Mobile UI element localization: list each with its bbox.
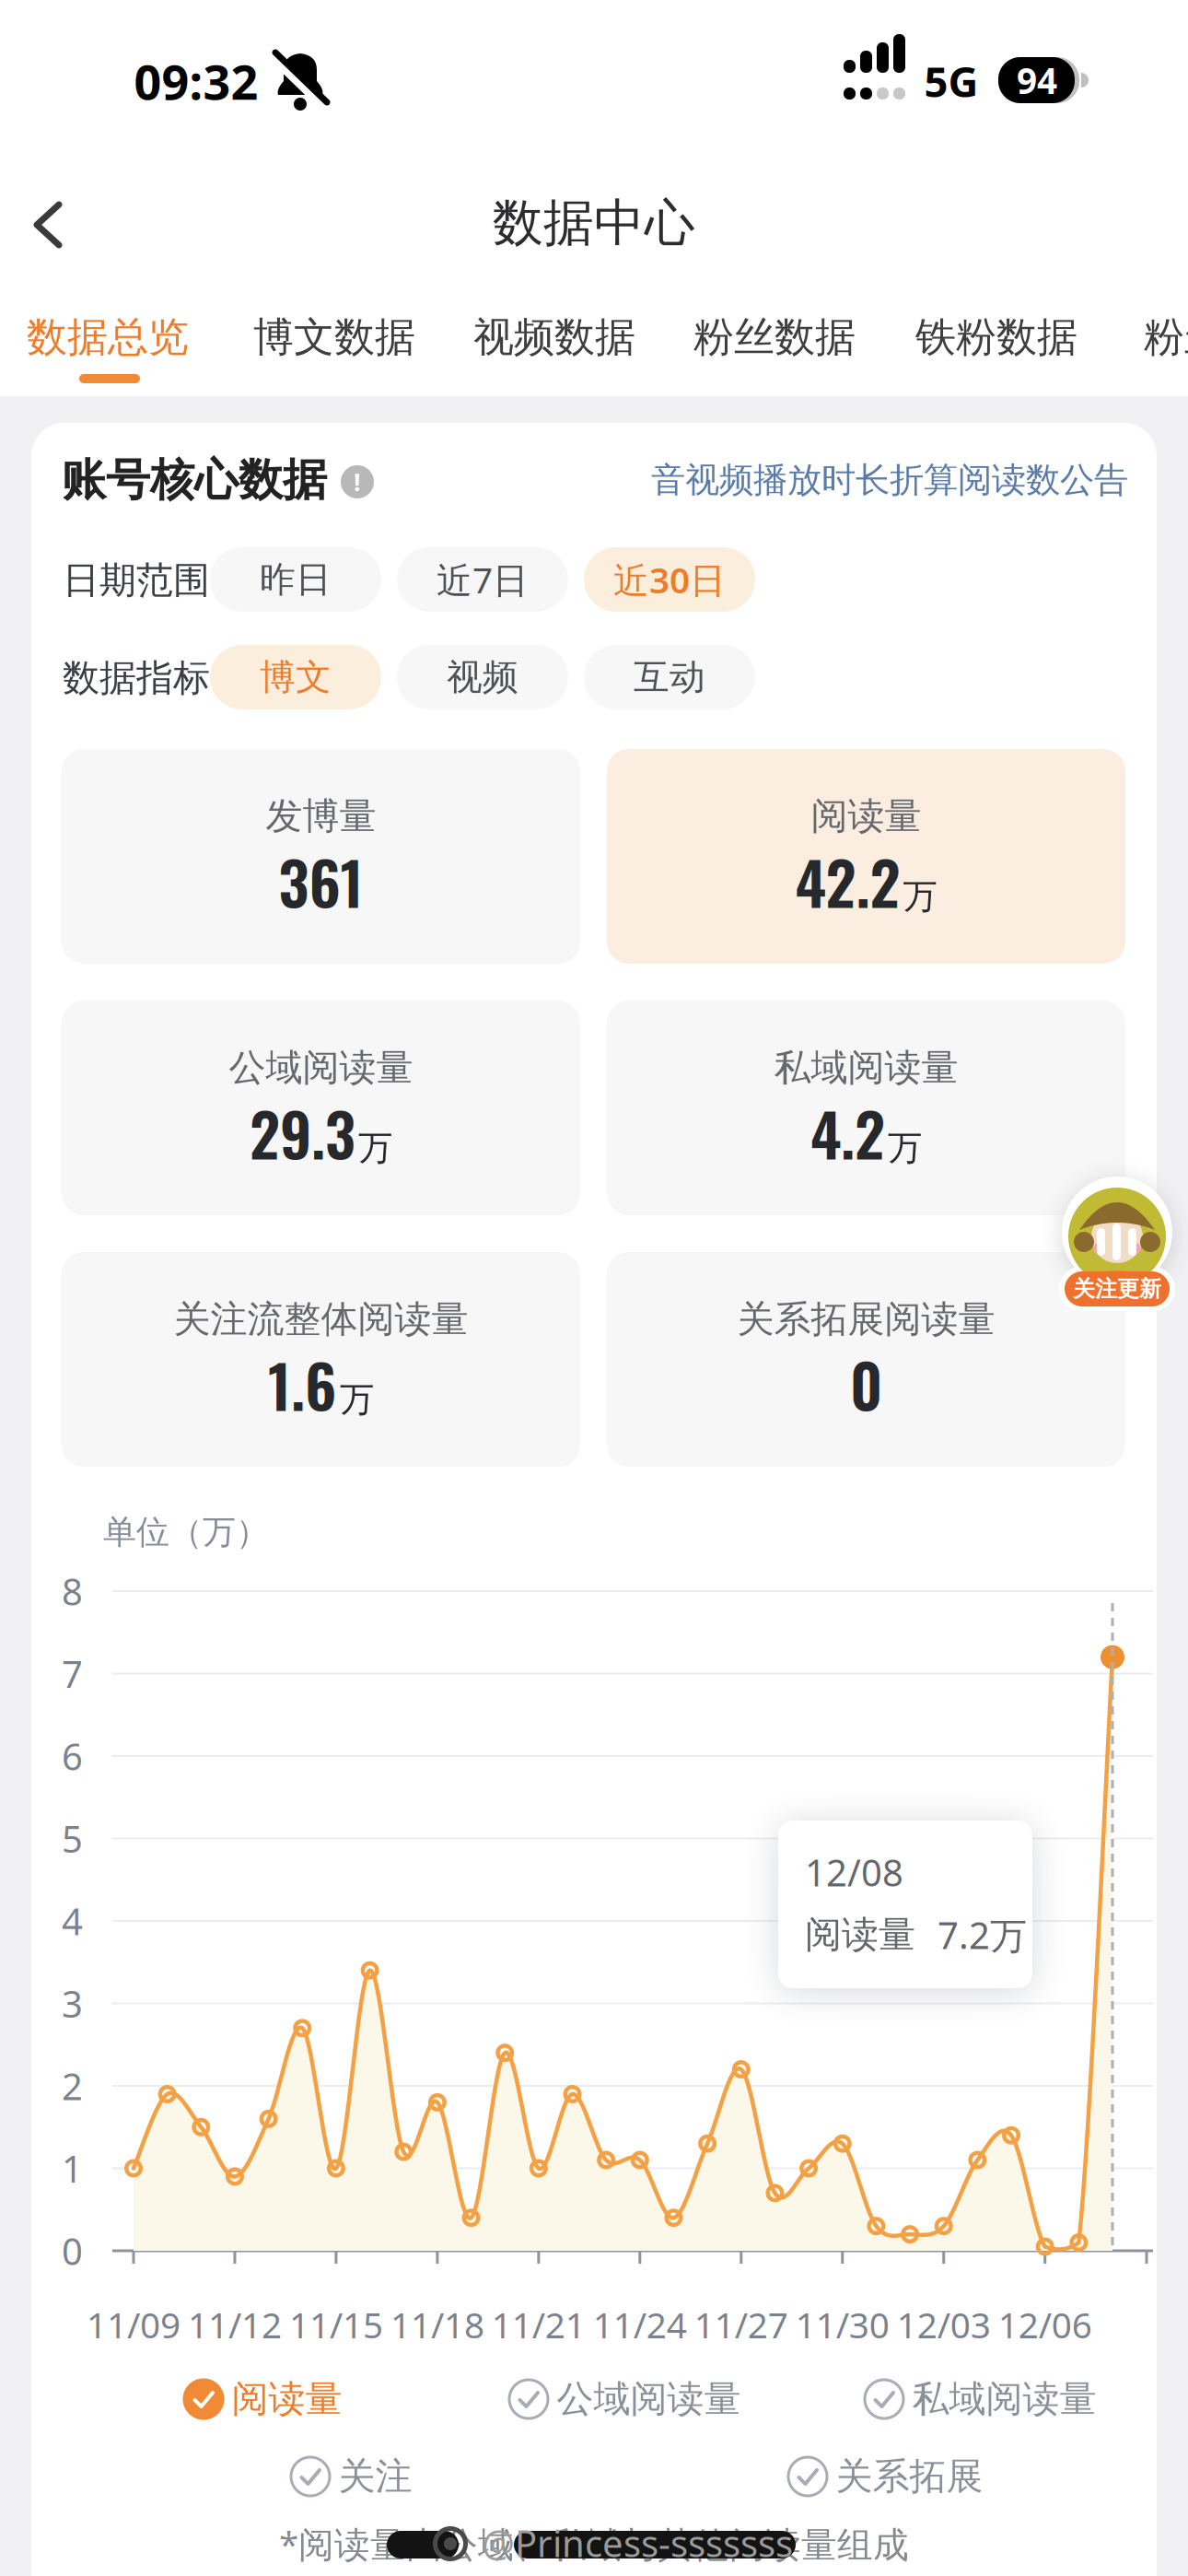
staticText: 09:32 — [134, 49, 258, 113]
staticText: 8 — [62, 1567, 83, 1616]
staticText: 昨日 — [260, 558, 332, 601]
staticText: 7.2万 — [938, 1910, 1027, 1959]
staticText: 1 — [62, 2144, 83, 2193]
staticText: 账号核心数据 — [62, 453, 327, 507]
staticText: 私域阅读量 — [774, 1045, 958, 1090]
button[interactable]: 粉丝数据 — [693, 312, 856, 362]
button[interactable]: 铁粉数据 — [915, 312, 1077, 362]
staticText: 关注流整体阅读量 — [174, 1297, 468, 1342]
staticText: 42.2 — [795, 836, 900, 925]
staticText: ! — [354, 466, 361, 498]
staticText: 11/24 — [593, 2301, 687, 2348]
staticText: 11/15 — [289, 2301, 383, 2348]
staticText: 11/30 — [795, 2301, 889, 2348]
staticText: 博文数据 — [253, 312, 415, 362]
staticText: 万 — [358, 1127, 392, 1169]
button[interactable]: 视频数据 — [473, 312, 635, 362]
button[interactable]: 博文 — [210, 645, 381, 709]
staticText: 5 — [62, 1814, 83, 1863]
staticText: 私域阅读量 — [912, 2376, 1096, 2422]
staticText: 粉丝数据 — [693, 312, 856, 362]
staticText: 视频数据 — [473, 312, 635, 362]
staticText: 12/08 — [805, 1848, 903, 1897]
staticText: 11/27 — [694, 2301, 788, 2348]
button[interactable]: 互动 — [584, 645, 755, 709]
staticText: 近30日 — [613, 556, 726, 603]
staticText: 单位（万） — [103, 1512, 269, 1553]
button[interactable]: 私域阅读量 — [607, 1001, 1125, 1215]
staticText: 4 — [62, 1896, 83, 1945]
staticText: 5G — [924, 53, 978, 109]
staticText: 11/09 — [87, 2301, 181, 2348]
staticText: 11/18 — [390, 2301, 484, 2348]
staticText: 7 — [62, 1649, 83, 1698]
staticText: @Princess-sssssss — [482, 2518, 793, 2567]
button[interactable]: 关系拓展 — [787, 2454, 983, 2499]
button[interactable]: 发博量 — [62, 749, 580, 964]
staticText: 万 — [340, 1378, 374, 1421]
staticText: 视频 — [447, 655, 518, 699]
staticText: 29.3 — [250, 1088, 355, 1177]
staticText: 94 — [1017, 56, 1057, 104]
staticText: 11/21 — [492, 2301, 586, 2348]
staticText: 阅读量 — [811, 794, 921, 839]
button[interactable]: 返回 — [31, 195, 72, 254]
staticText: 发博量 — [266, 794, 376, 839]
staticText: 博文 — [260, 655, 332, 699]
staticText: 万 — [903, 875, 937, 918]
button[interactable]: 昨日 — [210, 547, 381, 612]
staticText: 关系拓展阅读量 — [737, 1297, 995, 1342]
button[interactable]: 数据总览 — [27, 312, 189, 362]
staticText: 万 — [888, 1127, 922, 1169]
button[interactable]: 阅读量 — [183, 2376, 342, 2422]
staticText: 2 — [62, 2061, 83, 2110]
button[interactable]: 关注流整体阅读量 — [62, 1252, 580, 1467]
staticText: 361 — [279, 836, 363, 925]
staticText: 关注 — [338, 2454, 412, 2499]
button[interactable]: 关系拓展阅读量 — [607, 1252, 1125, 1467]
staticText: 0 — [62, 2226, 83, 2275]
staticText: 日期范围 — [63, 558, 210, 603]
staticText: 粉丝数据 — [1144, 312, 1188, 362]
staticText: *阅读量由公域、私域与其他阅读量组成 — [279, 2520, 909, 2567]
staticText: 0 — [850, 1339, 882, 1428]
staticText: 关注更新 — [1073, 1275, 1161, 1303]
staticText: 数据总览 — [27, 312, 189, 362]
staticText: 12/06 — [998, 2301, 1092, 2348]
button[interactable]: 音视频播放时长折算阅读数公告 — [483, 459, 1128, 501]
button[interactable]: 关注更新 — [1059, 1177, 1175, 1311]
staticText: 4.2 — [810, 1088, 885, 1177]
staticText: 关系拓展 — [836, 2454, 983, 2499]
staticText: 阅读量 — [805, 1912, 915, 1957]
button[interactable]: 粉丝数据 — [1144, 312, 1188, 362]
staticText: 音视频播放时长折算阅读数公告 — [651, 459, 1128, 501]
staticText: 近7日 — [437, 556, 529, 603]
staticText: 阅读量 — [232, 2376, 342, 2422]
button[interactable]: 阅读量 — [607, 749, 1125, 964]
staticText: 公域阅读量 — [557, 2376, 741, 2422]
staticText: 6 — [62, 1732, 83, 1780]
button[interactable]: 博文数据 — [253, 312, 415, 362]
button[interactable]: 近30日 — [584, 547, 755, 612]
staticText: 铁粉数据 — [915, 312, 1077, 362]
staticText: 数据指标 — [63, 655, 210, 701]
staticText: 11/12 — [188, 2301, 282, 2348]
button[interactable]: 公域阅读量 — [62, 1001, 580, 1215]
button[interactable]: 私域阅读量 — [863, 2376, 1096, 2422]
button[interactable]: 公域阅读量 — [508, 2376, 741, 2422]
staticText: 数据中心 — [493, 192, 695, 254]
button[interactable]: 说明 — [341, 465, 374, 498]
staticText: 3 — [62, 1979, 83, 2028]
staticText: 互动 — [634, 655, 705, 699]
staticText: 公域阅读量 — [229, 1045, 413, 1090]
button[interactable]: 关注 — [290, 2454, 412, 2499]
staticText: 12/03 — [897, 2301, 991, 2348]
button[interactable]: 近7日 — [397, 547, 568, 612]
staticText: 1.6 — [268, 1339, 337, 1428]
button[interactable]: 视频 — [397, 645, 568, 709]
